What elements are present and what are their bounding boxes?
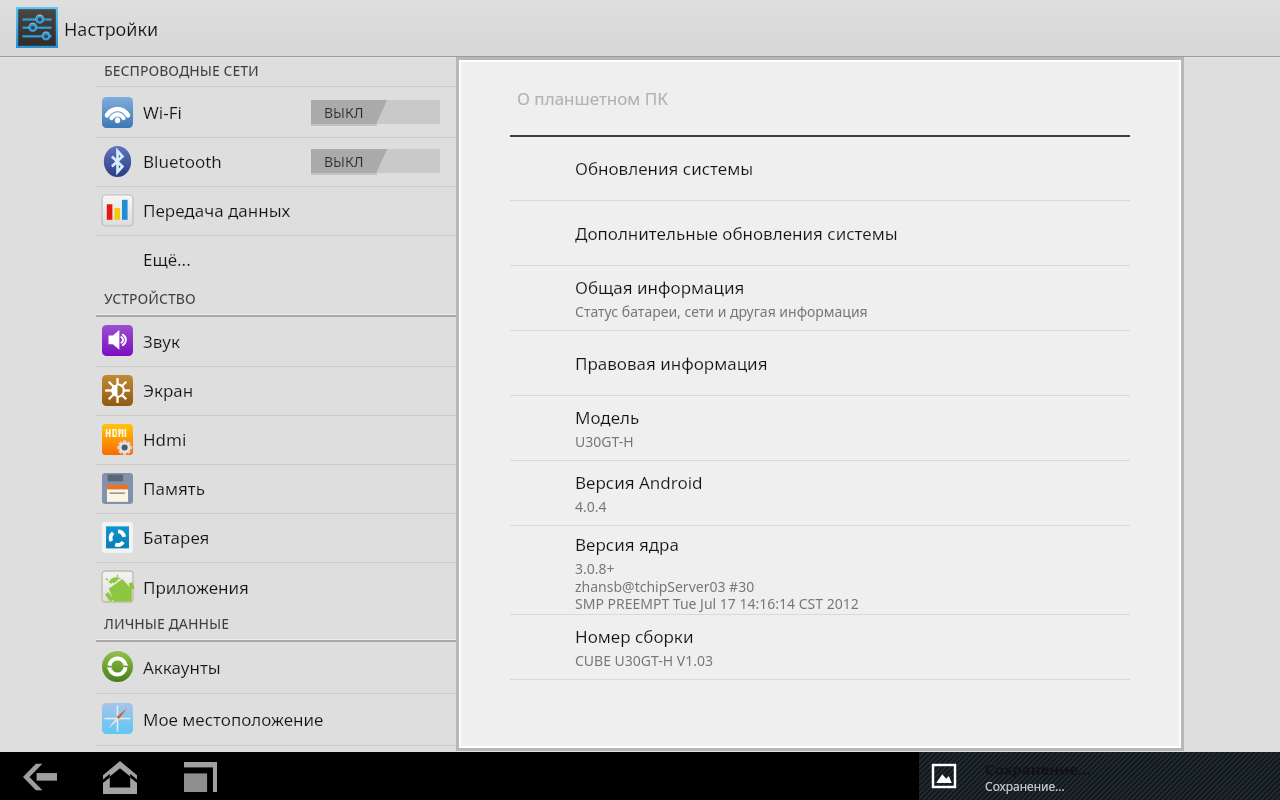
staticText: Дополнительные обновления системы [575, 222, 898, 245]
button[interactable]: Номер сборки [456, 615, 1174, 679]
button[interactable]: Обновления системы [456, 137, 1174, 200]
staticText: U30GT-H [575, 432, 634, 451]
staticText: ВЫКЛ [324, 152, 364, 171]
staticText: Общая информация [575, 276, 745, 299]
button[interactable]: Сохранение... [919, 752, 1280, 800]
staticText: Настройки [64, 17, 159, 42]
staticText: CUBE U30GT-H V1.03 [575, 651, 713, 670]
button[interactable]: Приложения [0, 562, 458, 612]
staticText: Мое местоположение [143, 708, 324, 731]
button[interactable]: Модель [456, 396, 1174, 460]
staticText: Hdmi [143, 428, 187, 451]
staticText: Сохранение... [985, 778, 1065, 794]
staticText: Номер сборки [575, 625, 694, 648]
button[interactable]: Ещё... [0, 235, 458, 284]
button[interactable]: Аккаунты [0, 641, 458, 693]
staticText: 4.0.4 [575, 497, 607, 516]
button[interactable]: Память [0, 464, 458, 513]
button[interactable]: Мое местоположение [0, 693, 458, 745]
button[interactable]: Экран [0, 366, 458, 415]
staticText: Аккаунты [143, 656, 221, 679]
staticText: 3.0.8+ zhansb@tchipServer03 #30 SMP PREE… [575, 559, 859, 613]
staticText: О планшетном ПК [517, 87, 668, 110]
staticText: Батарея [143, 526, 210, 549]
staticText: Передача данных [143, 199, 291, 222]
button[interactable]: Звук [0, 316, 458, 366]
staticText: Обновления системы [575, 157, 754, 180]
button[interactable]: Wi-Fi [0, 88, 458, 137]
staticText: Статус батареи, сети и другая информация [575, 302, 868, 321]
staticText: Сохранение... [985, 759, 1091, 779]
staticText: Версия Android [575, 471, 703, 494]
button[interactable]: Back [17, 754, 63, 800]
staticText: Правовая информация [575, 352, 768, 375]
button[interactable]: Bluetooth [0, 137, 458, 186]
staticText: Ещё... [143, 248, 191, 271]
button[interactable]: Передача данных [0, 186, 458, 235]
staticText: ЛИЧНЫЕ ДАННЫЕ [104, 614, 229, 633]
staticText: Wi-Fi [143, 101, 182, 124]
staticText: БЕСПРОВОДНЫЕ СЕТИ [104, 61, 259, 80]
button[interactable]: Дополнительные обновления системы [456, 201, 1174, 265]
staticText: УСТРОЙСТВО [104, 289, 196, 308]
button[interactable]: Версия Android [456, 461, 1174, 525]
staticText: Приложения [143, 576, 249, 599]
staticText: Bluetooth [143, 150, 222, 173]
staticText: Версия ядра [575, 533, 679, 556]
button[interactable]: Правовая информация [456, 331, 1174, 395]
button[interactable]: ВЫКЛ [311, 149, 440, 173]
button[interactable]: Recent apps [177, 754, 223, 800]
staticText: Звук [143, 330, 180, 353]
button[interactable]: Версия ядра [456, 526, 1174, 614]
button[interactable]: Hdmi [0, 415, 458, 464]
staticText: Экран [143, 379, 194, 402]
staticText: Память [143, 477, 205, 500]
button[interactable]: ВЫКЛ [311, 100, 440, 124]
staticText: ВЫКЛ [324, 103, 364, 122]
staticText: Модель [575, 406, 640, 429]
button[interactable]: Home [97, 754, 143, 800]
button[interactable]: Батарея [0, 513, 458, 562]
button[interactable]: Общая информация [456, 266, 1174, 330]
